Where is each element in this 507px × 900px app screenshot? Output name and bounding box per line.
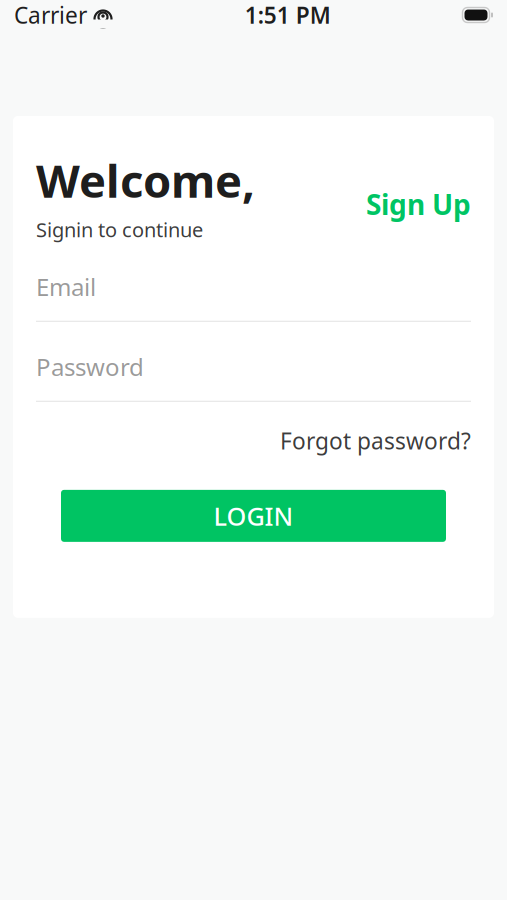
button[interactable]: Sign Up — [356, 186, 471, 243]
staticText: Forgot password? — [280, 426, 471, 456]
staticText: LOGIN — [213, 499, 293, 533]
staticText: Carrier — [14, 0, 87, 30]
staticText: Email — [36, 271, 96, 303]
staticText: 1:51 PM — [245, 0, 331, 30]
staticText: Password — [36, 351, 144, 383]
staticText: Sign Up — [366, 186, 471, 223]
staticText: Signin to continue — [36, 216, 203, 243]
button[interactable]: LOGIN — [61, 490, 446, 542]
staticText: Welcome, — [36, 150, 255, 210]
button[interactable]: Forgot password? — [280, 426, 471, 456]
